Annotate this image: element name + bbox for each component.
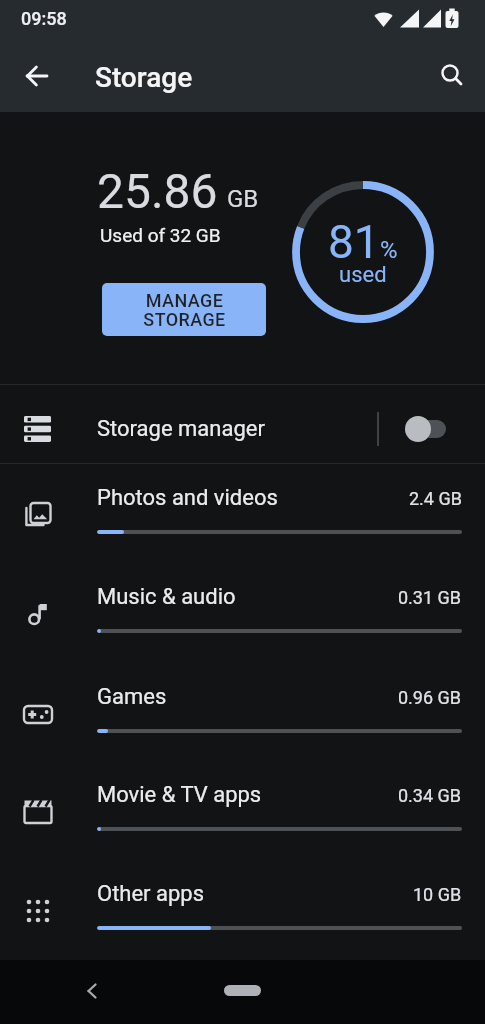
staticText: Movie & TV apps (97, 782, 262, 808)
staticText: MANAGE STORAGE (143, 290, 226, 330)
button[interactable] (0, 746, 485, 844)
button[interactable] (224, 985, 261, 996)
staticText: 10 GB (413, 884, 462, 905)
staticText: 0.96 GB (398, 687, 462, 708)
staticText: 25.86 (97, 163, 218, 219)
button[interactable] (0, 648, 485, 746)
button[interactable] (0, 385, 485, 463)
staticText: 0.31 GB (398, 587, 462, 608)
button[interactable] (0, 548, 485, 646)
button[interactable] (75, 973, 111, 1009)
staticText: 2.4 GB (409, 488, 462, 509)
staticText: Used of 32 GB (100, 224, 221, 246)
button[interactable] (399, 411, 439, 447)
staticText: 09:58 (21, 8, 67, 29)
staticText: Photos and videos (97, 485, 278, 511)
staticText: 0.34 GB (398, 785, 462, 806)
staticText: used (339, 262, 387, 288)
button[interactable] (0, 845, 485, 943)
staticText: Storage manager (97, 416, 265, 442)
button[interactable]: MANAGE STORAGE (102, 283, 266, 336)
staticText: Games (97, 684, 167, 710)
staticText: % (380, 236, 398, 264)
button[interactable] (429, 52, 475, 98)
staticText: GB (227, 185, 259, 213)
button[interactable] (0, 449, 485, 547)
button[interactable] (14, 53, 60, 99)
staticText: Music & audio (97, 584, 236, 610)
staticText: 81 (328, 215, 380, 269)
staticText: Storage (95, 61, 193, 94)
staticText: Other apps (97, 881, 205, 907)
